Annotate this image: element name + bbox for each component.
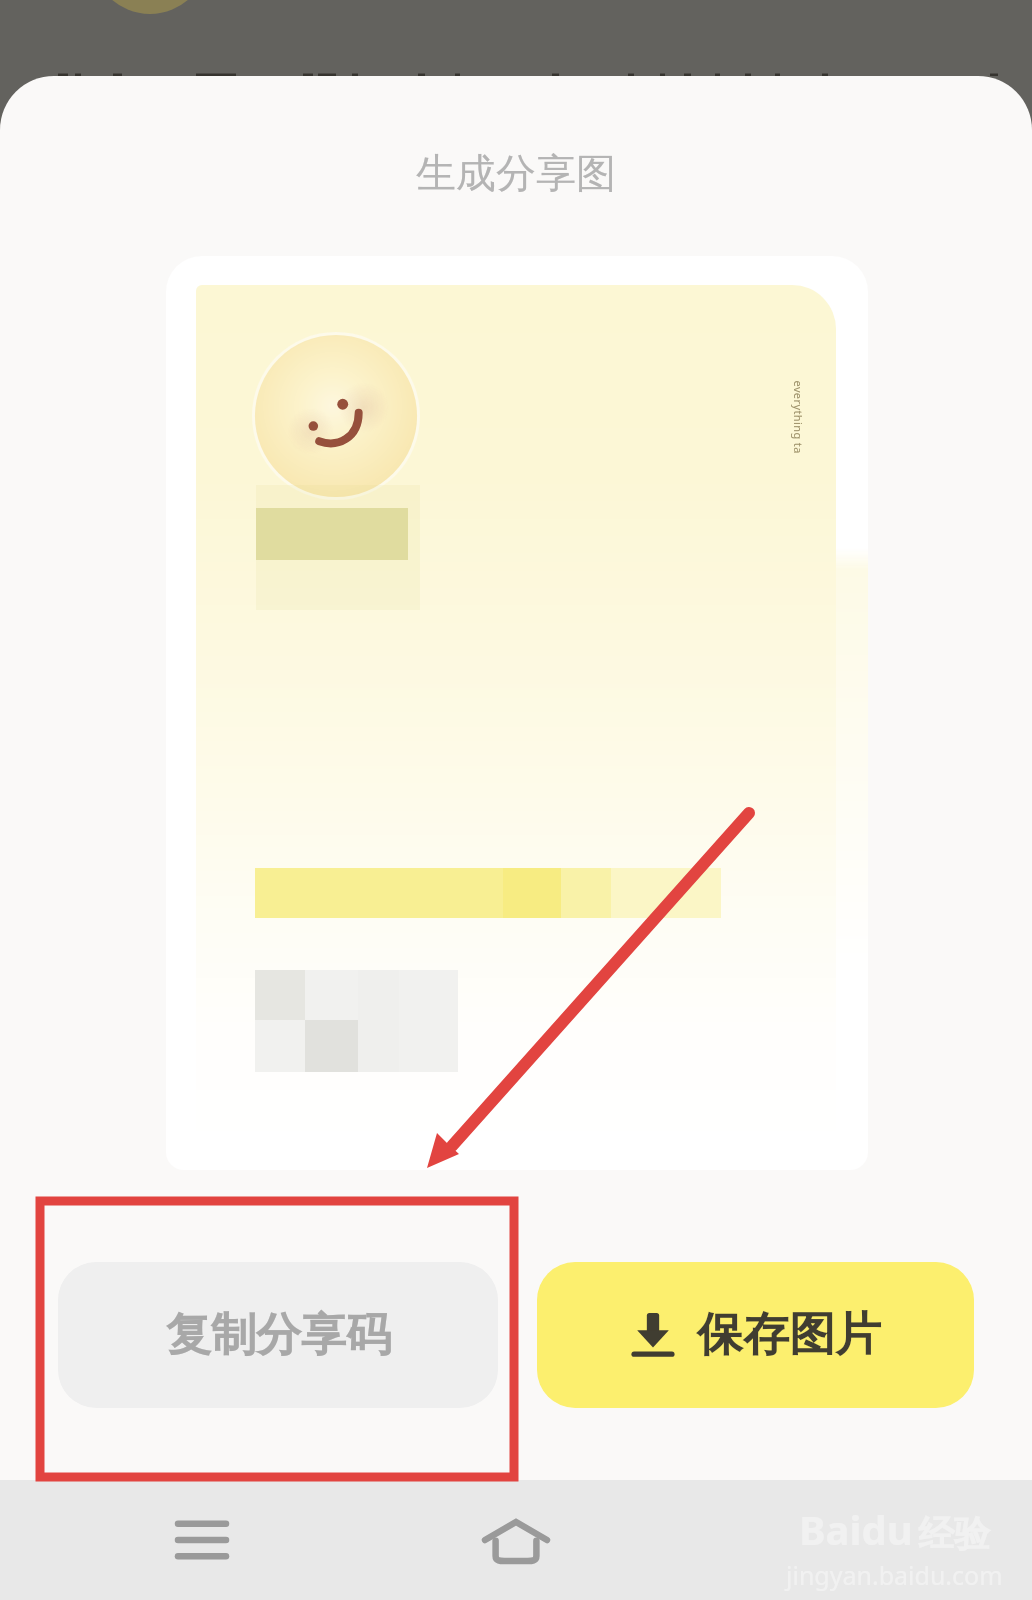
button[interactable]: 保存图片 (537, 1262, 974, 1408)
staticText: 保存图片 (697, 1306, 881, 1364)
staticText: 经验 (918, 1511, 990, 1556)
staticText: 复制分享码 (166, 1307, 391, 1364)
staticText: jingyan.baidu.com (786, 1558, 1003, 1592)
staticText: 生成分享图 (416, 148, 616, 198)
staticText: everything ta (790, 380, 805, 454)
button[interactable]: 复制分享码 (58, 1262, 498, 1408)
button[interactable]: Recent apps (147, 1480, 257, 1600)
staticText: Baidu (799, 1502, 913, 1556)
button[interactable]: Home (461, 1480, 571, 1600)
